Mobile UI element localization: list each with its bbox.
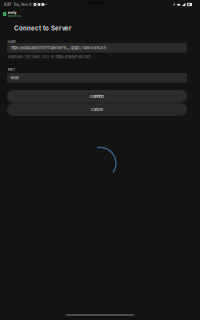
staticText: Cancel	[91, 107, 103, 112]
staticText: Port	[7, 67, 14, 72]
staticText: 8600	[10, 75, 18, 80]
staticText: https://youtu.be/xTh7zTcqWxw?si=_qZgDL74…	[10, 46, 105, 50]
staticText: Example: 192.168.1.100 or https://myserv…	[7, 54, 91, 59]
staticText: Host	[7, 39, 15, 44]
staticText: 5:27	[4, 2, 11, 7]
staticText: powered by ai	[7, 15, 21, 17]
button[interactable]: Cancel	[7, 103, 187, 116]
staticText: amity	[7, 10, 16, 14]
button[interactable]: Connect	[7, 90, 187, 103]
staticText: Connect	[90, 94, 104, 99]
staticText: Connect to Server	[14, 24, 71, 32]
staticText: Thu, Nov 6	[13, 2, 31, 7]
